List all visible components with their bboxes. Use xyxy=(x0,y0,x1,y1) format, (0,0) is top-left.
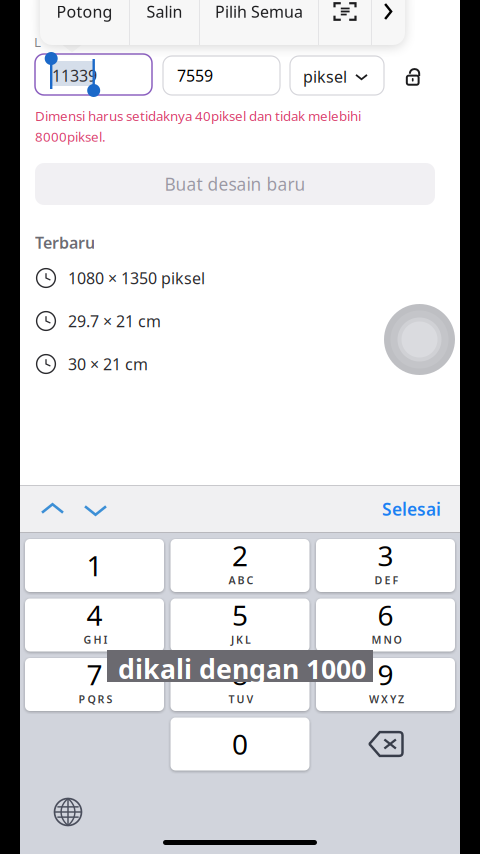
staticText: L xyxy=(34,33,41,51)
button[interactable]: Scan text xyxy=(319,0,371,45)
button[interactable]: 8 xyxy=(170,658,309,711)
button[interactable]: 7559 xyxy=(163,56,280,95)
staticText: 1080 × 1350 piksel xyxy=(68,267,205,289)
button[interactable]: Previous field xyxy=(33,490,71,528)
staticText: 2 xyxy=(232,537,248,574)
button[interactable]: Switch keyboard xyxy=(46,790,90,834)
button[interactable]: 1 xyxy=(25,539,164,592)
staticText: Dimensi harus setidaknya 40piksel dan ti… xyxy=(35,107,361,125)
button[interactable]: 2 xyxy=(170,539,309,592)
button[interactable]: 3 xyxy=(316,539,455,592)
button[interactable]: 5 xyxy=(170,598,309,651)
staticText: DEF xyxy=(374,573,398,587)
staticText: 5 xyxy=(232,596,248,633)
button[interactable]: Delete xyxy=(356,717,416,770)
staticText: GHI xyxy=(83,632,107,647)
staticText: 11339 xyxy=(52,65,97,86)
staticText: Salin xyxy=(146,1,182,22)
staticText: dikali dengan 1000 xyxy=(118,651,366,686)
staticText: 7 xyxy=(86,656,102,693)
button[interactable]: Buat desain baru xyxy=(35,163,435,205)
button[interactable]: 6 xyxy=(316,598,455,651)
staticText: Pilih Semua xyxy=(215,1,303,22)
button[interactable]: 4 xyxy=(25,598,164,651)
staticText: 6 xyxy=(377,596,393,633)
staticText: 8 xyxy=(232,656,248,693)
staticText: PQRS xyxy=(78,692,112,706)
button[interactable]: Selesai xyxy=(361,490,441,528)
button[interactable]: 9 xyxy=(316,658,455,711)
button[interactable]: Potong xyxy=(40,0,129,45)
staticText: 4 xyxy=(86,596,102,633)
staticText: JKL xyxy=(231,632,251,647)
staticText: WXYZ xyxy=(369,692,404,706)
button[interactable]: More options xyxy=(372,0,405,45)
staticText: 0 xyxy=(232,725,248,763)
button[interactable]: Salin xyxy=(130,0,199,45)
button[interactable]: 30 × 21 cm xyxy=(36,349,376,379)
staticText: 3 xyxy=(377,537,393,574)
staticText: Buat desain baru xyxy=(164,172,305,195)
staticText: 8000piksel. xyxy=(35,128,106,145)
staticText: Selesai xyxy=(382,497,441,520)
button[interactable]: Unlock aspect ratio xyxy=(399,60,431,92)
staticText: 30 × 21 cm xyxy=(68,353,148,375)
staticText: 7559 xyxy=(177,65,213,86)
staticText: Potong xyxy=(56,1,112,22)
staticText: TUV xyxy=(228,692,253,706)
button[interactable]: 7 xyxy=(25,658,164,711)
staticText: 9 xyxy=(377,656,393,693)
staticText: Terbaru xyxy=(35,232,95,253)
staticText: 1 xyxy=(86,547,102,584)
button[interactable]: Pilih Semua xyxy=(200,0,318,45)
staticText: piksel xyxy=(303,66,347,87)
button[interactable]: Next field xyxy=(76,490,114,528)
staticText: ABC xyxy=(228,573,253,587)
button[interactable]: piksel xyxy=(290,56,384,95)
staticText: MNO xyxy=(371,632,401,647)
button[interactable]: 29.7 × 21 cm xyxy=(36,306,376,336)
button[interactable]: 1080 × 1350 piksel xyxy=(36,263,376,293)
button[interactable]: 0 xyxy=(170,717,309,770)
staticText: 29.7 × 21 cm xyxy=(68,310,161,332)
